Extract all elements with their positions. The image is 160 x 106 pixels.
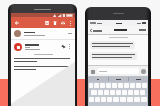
button[interactable]: Key [134, 97, 140, 102]
button[interactable]: Key [127, 97, 133, 102]
button[interactable]: More options [67, 20, 73, 26]
button[interactable]: Reply [11, 40, 75, 53]
button[interactable]: Key [94, 83, 99, 88]
button[interactable]: Key [98, 90, 103, 95]
button[interactable]: Send [141, 69, 146, 74]
button[interactable]: Key [100, 83, 105, 88]
button[interactable]: Key [113, 97, 119, 102]
button[interactable]: Key [106, 83, 111, 88]
button[interactable]: Back [13, 19, 20, 26]
button[interactable]: Suggestion [88, 76, 108, 82]
button[interactable]: Key [136, 83, 141, 88]
button[interactable]: Key [118, 83, 123, 88]
button[interactable]: Archive [44, 20, 50, 26]
button[interactable]: Key [89, 83, 93, 88]
button[interactable]: Key [91, 90, 97, 95]
button[interactable]: Reply [60, 43, 67, 50]
button[interactable]: Key [122, 90, 127, 95]
button[interactable]: Key [120, 97, 126, 102]
button[interactable]: Delete [52, 20, 58, 26]
button[interactable] [11, 28, 75, 39]
button[interactable]: Key [101, 97, 106, 102]
button[interactable]: Key [112, 83, 117, 88]
button[interactable]: Key [140, 90, 145, 95]
button[interactable]: Key [95, 97, 100, 102]
button[interactable]: Key [89, 97, 94, 102]
button[interactable]: Camera [90, 69, 95, 74]
button[interactable] [97, 68, 139, 74]
button[interactable]: Messages [90, 29, 102, 32]
button[interactable]: Mark unread [60, 20, 66, 26]
button[interactable]: Key [116, 90, 121, 95]
button[interactable]: Key [104, 90, 109, 95]
button[interactable]: Key [142, 83, 147, 88]
button[interactable]: Key [110, 90, 115, 95]
button[interactable]: More [67, 44, 72, 49]
button[interactable]: Key [107, 97, 112, 102]
button[interactable]: Key [134, 90, 139, 95]
button[interactable]: Suggestion [109, 76, 128, 82]
button[interactable]: Key [124, 83, 129, 88]
button[interactable]: Key [141, 97, 147, 102]
button[interactable]: Key [130, 83, 135, 88]
button[interactable]: Suggestion [129, 76, 148, 82]
button[interactable]: Key [128, 90, 133, 95]
